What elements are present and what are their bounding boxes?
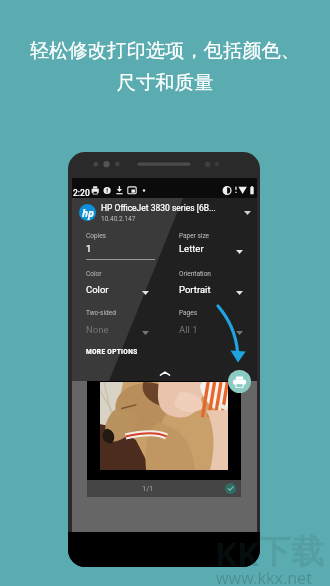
staticText: MORE OPTIONS: [86, 348, 138, 356]
staticText: Color: [86, 270, 102, 278]
staticText: 10.40.2.147: [101, 215, 136, 223]
staticText: Orientation: [179, 270, 211, 278]
staticText: 2:20: [73, 188, 90, 198]
staticText: www.kkx.net: [216, 567, 312, 586]
staticText: HP OfficeJet 3830 series [6B...: [101, 203, 216, 213]
staticText: hp: [82, 206, 94, 220]
staticText: 轻松修改打印选项，包括颜色、 尺寸和质量: [0, 38, 330, 94]
button[interactable]: MORE OPTIONS: [86, 348, 138, 356]
button[interactable]: Collapse options: [155, 369, 175, 379]
staticText: 1/1: [142, 484, 154, 493]
staticText: 下载: [258, 531, 324, 573]
staticText: Pages: [179, 309, 198, 317]
staticText: All 1: [179, 324, 198, 335]
staticText: Letter: [179, 243, 204, 254]
staticText: Portrait: [179, 284, 211, 295]
staticText: Two-sided: [86, 309, 116, 317]
button[interactable]: Print: [228, 370, 251, 393]
staticText: Color: [86, 284, 109, 295]
button[interactable]: Page selected: [225, 483, 236, 494]
staticText: None: [86, 324, 109, 335]
staticText: 1: [86, 243, 92, 254]
button[interactable]: [76, 201, 253, 225]
staticText: KK: [215, 531, 259, 576]
staticText: Paper size: [179, 232, 210, 240]
staticText: Copies: [86, 232, 106, 240]
